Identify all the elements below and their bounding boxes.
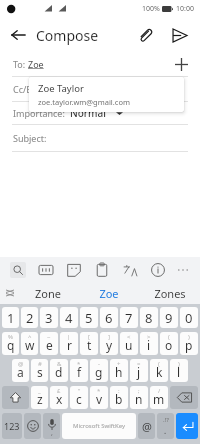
button[interactable]: #	[31, 359, 48, 382]
button[interactable]: /	[150, 386, 168, 409]
staticText: .	[164, 425, 167, 436]
button[interactable]: 123	[2, 413, 22, 439]
button[interactable]: >	[140, 332, 158, 355]
button[interactable]: *	[70, 359, 88, 382]
button[interactable]: Cc/Bcc:	[0, 77, 200, 101]
button[interactable]: Backspace	[170, 386, 198, 409]
button[interactable]: _	[31, 386, 48, 409]
button[interactable]: More	[175, 262, 191, 278]
button[interactable]: (	[150, 359, 168, 382]
button[interactable]: <	[120, 332, 138, 355]
staticText: g	[95, 364, 103, 380]
button[interactable]: 0	[180, 307, 198, 328]
button[interactable]: &	[50, 359, 68, 382]
staticText: Microsoft SwiftKey	[73, 422, 125, 430]
button[interactable]: Add recipient	[170, 53, 192, 75]
staticText: q	[7, 337, 15, 353]
button[interactable]: Clipboard	[93, 261, 110, 278]
staticText: @	[142, 419, 152, 434]
button[interactable]: 6	[100, 307, 118, 328]
staticText: b	[115, 391, 123, 407]
staticText: Normal	[70, 106, 106, 120]
button[interactable]: Search	[9, 261, 26, 278]
button[interactable]: *	[90, 386, 108, 409]
staticText: r	[67, 337, 72, 353]
staticText: z	[37, 391, 43, 407]
button[interactable]: .!?	[157, 413, 174, 439]
button[interactable]: [	[80, 332, 98, 355]
staticText: 4	[65, 309, 73, 327]
button[interactable]: Enter	[176, 413, 198, 439]
staticText: a	[17, 364, 24, 380]
staticText: To:	[13, 58, 28, 70]
button[interactable]: +	[110, 359, 128, 382]
button[interactable]: To:	[0, 52, 200, 76]
button[interactable]: ~	[40, 332, 58, 355]
button[interactable]: 7	[120, 307, 138, 328]
button[interactable]: 8	[140, 307, 158, 328]
staticText: 5	[85, 309, 93, 327]
button[interactable]: @	[12, 359, 29, 382]
button[interactable]: 3	[40, 307, 58, 328]
staticText: £	[57, 387, 61, 395]
button[interactable]: 5	[80, 307, 98, 328]
button[interactable]: Stickers	[65, 261, 82, 278]
button[interactable]: :	[110, 386, 128, 409]
button[interactable]: Shift	[2, 386, 29, 409]
staticText: k	[156, 364, 163, 380]
staticText: @	[18, 360, 24, 368]
staticText: p	[185, 337, 193, 353]
staticText: Subject:	[13, 132, 47, 144]
button[interactable]: Info	[149, 261, 166, 278]
button[interactable]: )	[170, 359, 188, 382]
button[interactable]: =	[130, 359, 148, 382]
button[interactable]: Space	[62, 413, 136, 439]
button[interactable]: Zones	[139, 282, 200, 304]
staticText: #	[38, 360, 42, 368]
staticText: =	[137, 360, 141, 368]
button[interactable]: GIF	[37, 261, 54, 278]
button[interactable]: Subject:	[0, 125, 200, 151]
staticText: 6	[105, 309, 113, 327]
staticText: 123	[4, 420, 20, 432]
button[interactable]: 4	[60, 307, 78, 328]
staticText: x	[56, 391, 63, 407]
button[interactable]: 9	[160, 307, 178, 328]
staticText: ,	[51, 428, 53, 438]
button[interactable]: Importance:	[0, 102, 200, 124]
button[interactable]: "	[70, 386, 88, 409]
button[interactable]: Zoe	[78, 282, 139, 304]
staticText: 1	[7, 309, 15, 327]
button[interactable]: Voice input	[43, 413, 60, 439]
button[interactable]: ]	[100, 332, 118, 355]
staticText: zoe.taylor.wm@gmail.com	[38, 97, 130, 107]
button[interactable]: ;	[130, 386, 148, 409]
button[interactable]: -	[90, 359, 108, 382]
button[interactable]: Back	[5, 22, 31, 48]
button[interactable]: Send	[166, 22, 192, 48]
button[interactable]: Attach	[132, 22, 158, 48]
button[interactable]: Zoe Taylor	[29, 77, 184, 112]
button[interactable]: %	[2, 332, 19, 355]
staticText: |	[67, 333, 71, 341]
staticText: -	[98, 360, 100, 368]
button[interactable]: )	[180, 332, 198, 355]
staticText: .!?	[163, 416, 169, 424]
staticText: Zones	[154, 286, 186, 301]
staticText: [	[88, 333, 90, 341]
button[interactable]: |	[60, 332, 78, 355]
staticText: *	[97, 387, 101, 395]
button[interactable]: Emoji	[24, 413, 41, 439]
button[interactable]: ^	[21, 332, 38, 355]
button[interactable]: @	[138, 413, 155, 439]
button[interactable]: £	[50, 386, 68, 409]
button[interactable]: (	[160, 332, 178, 355]
staticText: ]	[108, 333, 110, 341]
button[interactable]: 1	[2, 307, 19, 328]
staticText: Compose	[36, 26, 99, 45]
button[interactable]: Translate	[121, 261, 138, 278]
button[interactable]: 2	[21, 307, 38, 328]
staticText: %	[8, 333, 13, 341]
button[interactable]: Zone	[18, 282, 78, 304]
staticText: w	[25, 337, 35, 353]
